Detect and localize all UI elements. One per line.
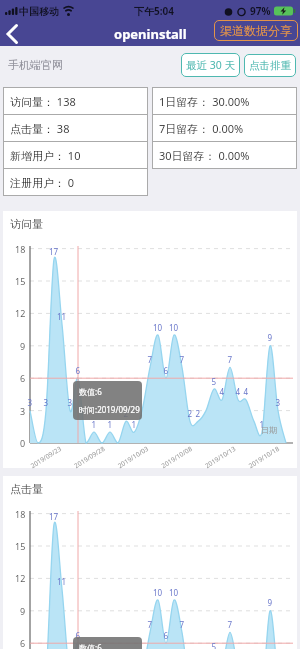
button[interactable]: 最近 30 天 bbox=[186, 58, 235, 72]
staticText: 访问量： 138 bbox=[10, 94, 76, 109]
staticText: 1日留存： 30.00% bbox=[159, 94, 250, 109]
staticText: 最近 30 天 bbox=[186, 58, 235, 72]
staticText: 渠道数据分享 bbox=[220, 23, 292, 38]
staticText: 新增用户： 10 bbox=[10, 148, 81, 163]
staticText: 7日留存： 0.00% bbox=[159, 121, 244, 136]
staticText: 点击量： 38 bbox=[10, 121, 70, 136]
staticText: 点击排重 bbox=[249, 59, 291, 72]
button[interactable]: 点击排重 bbox=[249, 59, 291, 72]
staticText: 下午5:04 bbox=[134, 4, 174, 18]
staticText: 中国移动 bbox=[19, 5, 59, 18]
button[interactable] bbox=[0, 22, 30, 46]
staticText: openinstall bbox=[114, 25, 187, 43]
staticText: 注册用户： 0 bbox=[10, 175, 75, 190]
staticText: 30日留存： 0.00% bbox=[159, 148, 250, 163]
staticText: 97% bbox=[250, 4, 271, 18]
staticText: 手机端官网 bbox=[8, 58, 63, 72]
button[interactable]: 渠道数据分享 bbox=[220, 23, 292, 38]
